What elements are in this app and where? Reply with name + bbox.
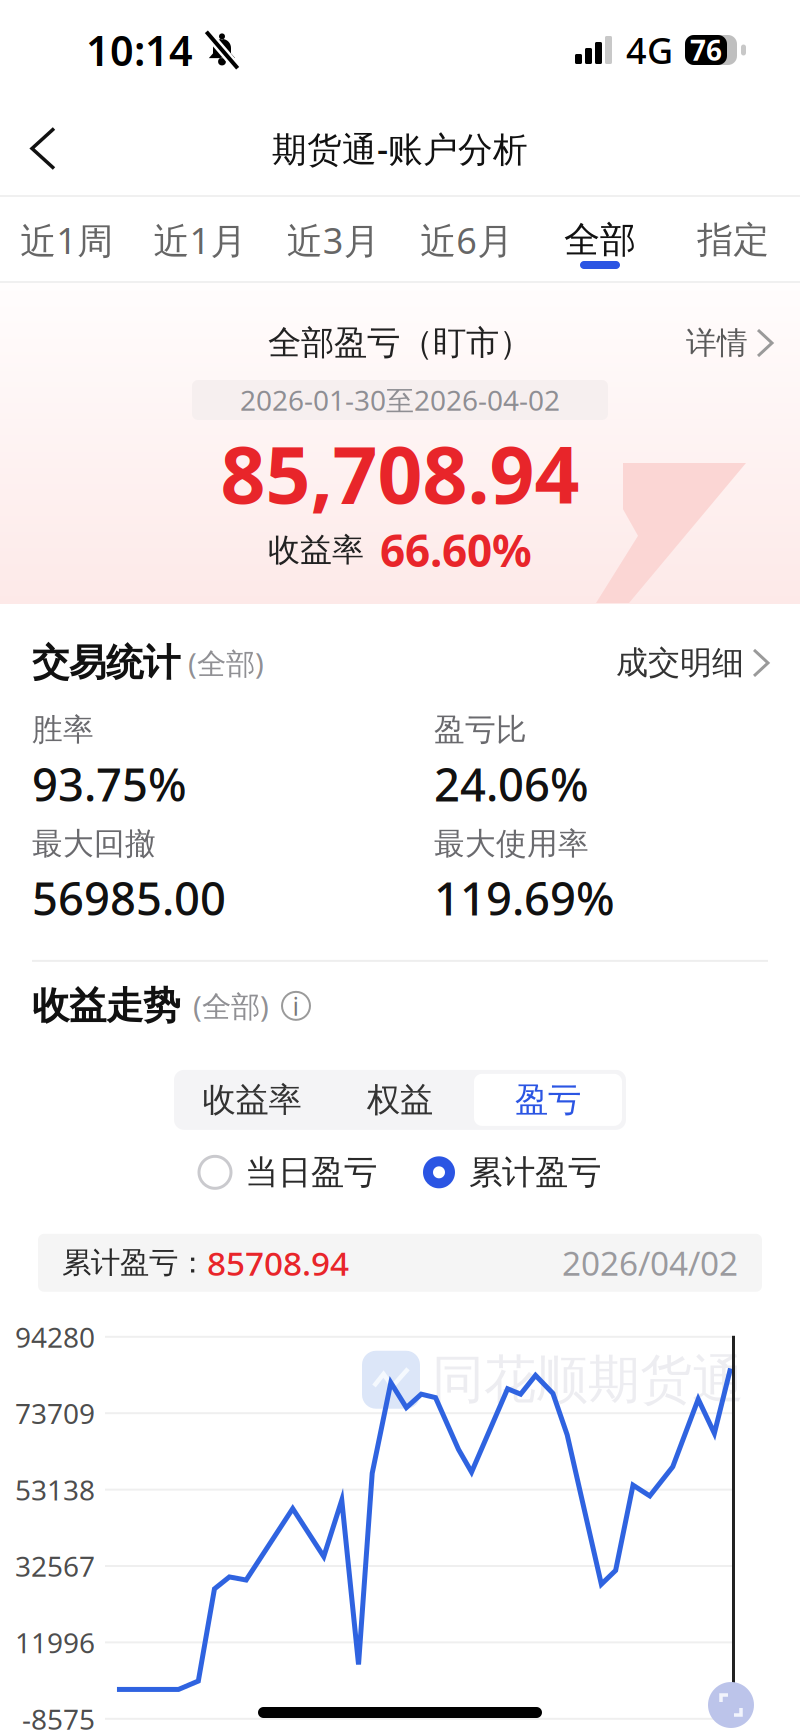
staticText: 同花顺期货通 — [432, 1348, 744, 1412]
staticText: 最大回撤 — [32, 825, 156, 863]
button[interactable]: 近1周 — [0, 197, 133, 283]
button[interactable]: Back — [0, 102, 84, 194]
staticText: 累计盈亏： — [62, 1245, 207, 1281]
staticText: 盈亏 — [515, 1079, 581, 1120]
staticText: 93.75% — [32, 754, 187, 814]
staticText: 2026/04/02 — [562, 1241, 738, 1285]
button[interactable]: 近3月 — [267, 197, 400, 283]
button[interactable]: 近1月 — [133, 197, 267, 283]
staticText: 32567 — [15, 1547, 95, 1585]
staticText: 当日盈亏 — [245, 1152, 377, 1193]
staticText: 56985.00 — [32, 868, 226, 928]
staticText: 期货通-账户分析 — [272, 125, 528, 171]
staticText: 85708.94 — [207, 1241, 349, 1285]
staticText: 收益率 — [268, 530, 364, 570]
staticText: 近1周 — [20, 216, 113, 264]
button[interactable]: 权益 — [326, 1074, 474, 1126]
button[interactable]: 累计盈亏 — [423, 1144, 601, 1201]
staticText: 交易统计 — [32, 640, 180, 686]
button[interactable]: 指定 — [667, 197, 800, 283]
staticText: 4G — [626, 26, 673, 74]
staticText: 详情 — [686, 324, 748, 362]
staticText: i — [292, 989, 299, 1023]
staticText: 收益走势 — [32, 983, 180, 1029]
staticText: 24.06% — [434, 754, 589, 814]
staticText: 近3月 — [287, 216, 380, 264]
button[interactable]: 当日盈亏 — [199, 1144, 377, 1201]
staticText: 94280 — [15, 1318, 95, 1355]
staticText: -8575 — [22, 1700, 95, 1734]
staticText: 全部盈亏（盯市） — [268, 322, 532, 363]
staticText: (全部) — [180, 643, 264, 682]
staticText: 66.60% — [380, 521, 532, 579]
staticText: 11996 — [15, 1624, 95, 1661]
staticText: 2026-01-30至2026-04-02 — [240, 381, 560, 419]
staticText: 53138 — [15, 1471, 95, 1508]
button[interactable]: 近6月 — [400, 197, 533, 283]
staticText: 85,708.94 — [220, 421, 579, 525]
staticText: 近6月 — [420, 216, 513, 264]
staticText: 成交明细 — [616, 643, 744, 683]
button[interactable]: Fullscreen — [708, 1682, 754, 1728]
button[interactable]: 全部 — [533, 197, 667, 283]
staticText: 权益 — [367, 1079, 433, 1120]
staticText: 119.69% — [434, 868, 615, 928]
button[interactable]: 收益率 — [178, 1074, 326, 1126]
staticText: 累计盈亏 — [469, 1152, 601, 1193]
staticText: 盈亏比 — [434, 711, 527, 749]
staticText: 10:14 — [86, 23, 193, 77]
staticText: 最大使用率 — [434, 825, 589, 863]
button[interactable]: 盈亏 — [474, 1074, 622, 1126]
staticText: (全部) — [193, 986, 269, 1025]
button[interactable]: 详情 — [686, 310, 800, 376]
staticText: 收益率 — [202, 1079, 301, 1120]
staticText: 76 — [690, 31, 722, 69]
staticText: 73709 — [15, 1395, 95, 1432]
staticText: 全部 — [564, 218, 636, 262]
staticText: 近1月 — [153, 216, 246, 264]
staticText: 指定 — [697, 218, 769, 262]
button[interactable]: 成交明细 — [616, 643, 768, 683]
staticText: 胜率 — [32, 711, 94, 749]
